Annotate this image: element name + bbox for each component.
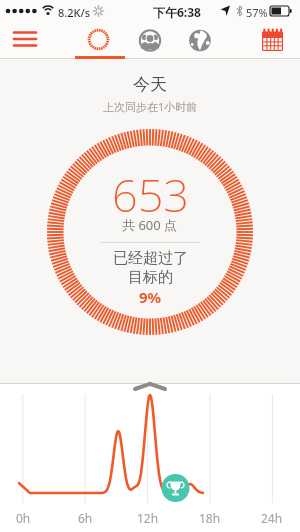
staticText: 57% bbox=[246, 5, 268, 20]
staticText: 今天 bbox=[133, 74, 167, 95]
button[interactable] bbox=[254, 24, 294, 56]
staticText: 18h bbox=[199, 510, 221, 526]
button[interactable] bbox=[179, 24, 221, 56]
staticText: 下午6:38 bbox=[153, 4, 201, 20]
button[interactable] bbox=[129, 24, 171, 56]
staticText: 24h bbox=[261, 510, 283, 526]
staticText: 9% bbox=[139, 287, 162, 307]
button[interactable] bbox=[6, 24, 46, 56]
staticText: 0h bbox=[16, 510, 31, 526]
staticText: 8.2K/s bbox=[58, 5, 91, 20]
staticText: 已经超过了 bbox=[113, 249, 188, 268]
staticText: 上次同步在1小时前 bbox=[103, 99, 198, 114]
staticText: 共 600 点 bbox=[122, 216, 178, 234]
button[interactable] bbox=[78, 24, 120, 56]
staticText: 12h bbox=[137, 510, 159, 526]
staticText: 6h bbox=[78, 510, 93, 526]
staticText: 目标的 bbox=[128, 268, 173, 287]
staticText: 653 bbox=[112, 164, 189, 225]
